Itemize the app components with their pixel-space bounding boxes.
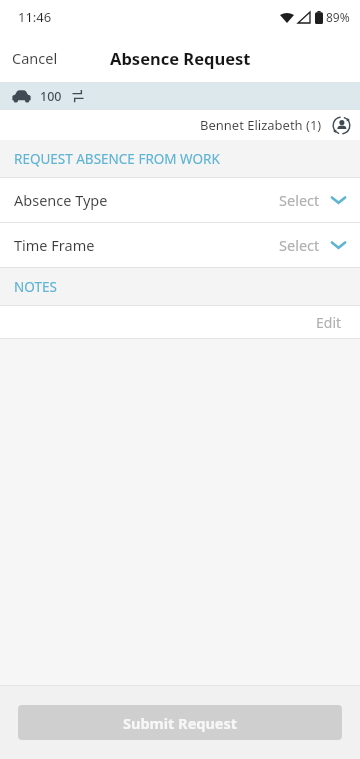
staticText: Cancel (12, 48, 58, 68)
staticText: Select (279, 190, 320, 210)
staticText: Select (279, 235, 320, 255)
button[interactable]: Bennet Elizabeth (1) (0, 110, 360, 140)
button[interactable]: Absence Type (0, 178, 360, 222)
staticText: 89% (326, 9, 350, 25)
staticText: Absence Type (14, 190, 108, 210)
staticText: Submit Request (123, 713, 238, 733)
staticText: 11:46 (18, 8, 52, 26)
button[interactable]: 100 (0, 82, 360, 110)
staticText: 100 (40, 88, 62, 105)
staticText: NOTES (14, 278, 57, 296)
button[interactable]: Time Frame (0, 223, 360, 267)
staticText: REQUEST ABSENCE FROM WORK (14, 150, 220, 168)
button[interactable]: Edit (0, 306, 360, 338)
button[interactable]: Cancel (0, 38, 70, 78)
button[interactable]: Submit Request (18, 705, 342, 740)
staticText: Bennet Elizabeth (1) (200, 116, 322, 134)
staticText: Edit (316, 313, 342, 332)
other: Switch user (332, 116, 351, 135)
staticText: Absence Request (110, 47, 251, 69)
staticText: Time Frame (14, 235, 95, 255)
